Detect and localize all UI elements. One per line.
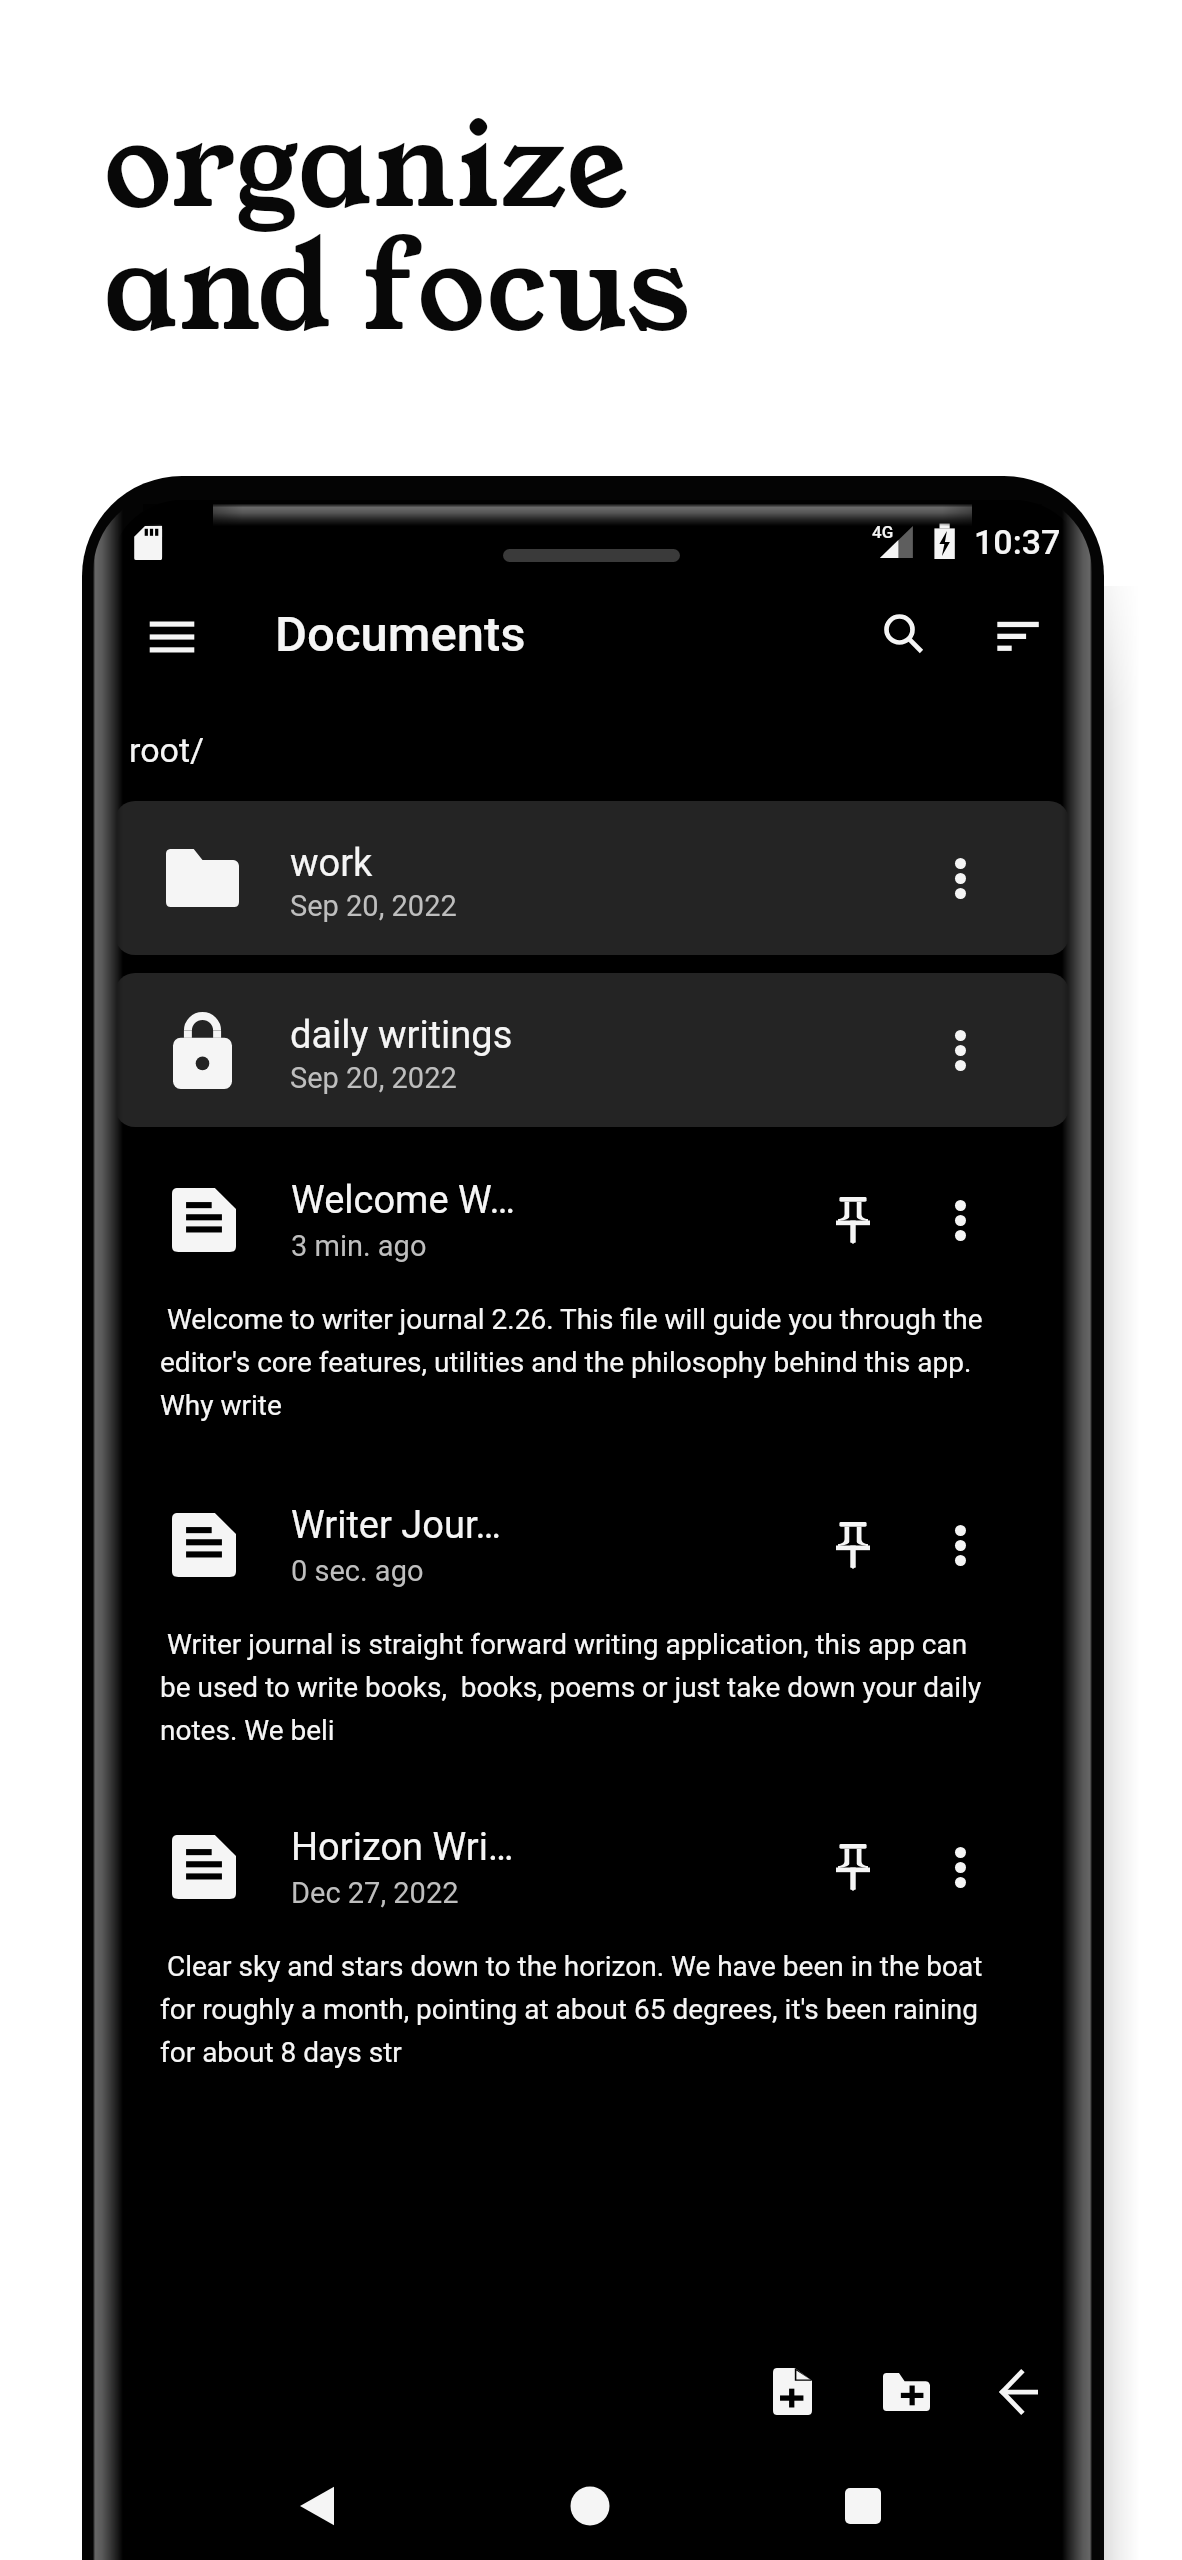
staticText: 0 sec. ago [291,1554,424,1588]
button[interactable]: Sort [971,588,1065,682]
button[interactable]: Home [545,2461,635,2551]
staticText: Clear sky and stars down to the horizon.… [160,1950,986,2069]
staticText: Welcome to writer journal 2.26. This fil… [160,1303,986,1422]
button[interactable]: Back [974,2347,1064,2437]
staticText: Sep 20, 2022 [290,889,457,923]
staticText: Dec 27, 2022 [291,1876,459,1910]
button[interactable]: New folder [861,2347,951,2437]
staticText: Horizon Wri… [291,1825,514,1870]
staticText: Writer Jour… [291,1503,501,1548]
staticText: organize [104,83,630,250]
button[interactable]: Search [860,590,954,684]
button[interactable]: Writer Jour… [110,1485,1086,1605]
staticText: 10:37 [974,522,1061,562]
staticText: daily writings [290,1013,513,1058]
staticText: root/ [129,730,205,770]
button[interactable]: Back [272,2461,362,2551]
button[interactable]: More options [851,973,1069,1127]
button[interactable]: Recent apps [818,2461,908,2551]
staticText: 4G [872,522,894,542]
staticText: Writer journal is straight forward writi… [160,1628,986,1747]
button[interactable]: More options [897,1160,1023,1280]
staticText: and focus [104,206,692,373]
staticText: Welcome W… [291,1178,515,1223]
button[interactable]: daily writings [115,973,1069,1127]
staticText: Documents [275,606,526,663]
staticText: work [290,841,373,886]
button[interactable]: Pin [809,1807,897,1927]
button[interactable]: Horizon Wri… [110,1807,1086,1927]
button[interactable]: More options [897,1485,1023,1605]
button[interactable]: Pin [809,1160,897,1280]
staticText: 3 min. ago [291,1229,427,1263]
button[interactable]: Open navigation menu [125,590,219,684]
button[interactable]: Welcome W… [110,1160,1086,1280]
staticText: Sep 20, 2022 [290,1061,457,1095]
button[interactable]: New file [747,2346,837,2436]
button[interactable]: work [115,801,1069,955]
button[interactable]: More options [897,1807,1023,1927]
button[interactable]: Pin [809,1485,897,1605]
button[interactable]: More options [851,801,1069,955]
